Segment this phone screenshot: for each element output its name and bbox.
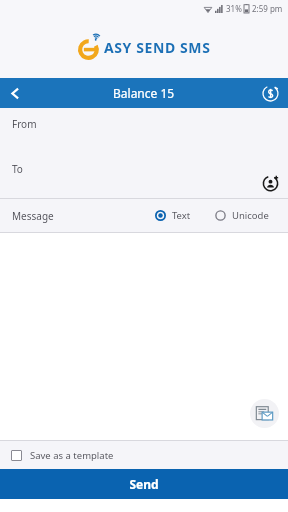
staticText: Send — [129, 476, 159, 492]
button[interactable]: Add contact — [258, 171, 282, 195]
button[interactable]: From — [0, 108, 288, 153]
button[interactable]: Unicode — [215, 209, 269, 222]
staticText: Unicode — [232, 209, 269, 222]
staticText: ASY SEND SMS — [104, 38, 211, 57]
staticText: Text — [172, 209, 191, 222]
button[interactable]: Insert template — [250, 399, 279, 428]
button[interactable]: Save as a template — [0, 441, 288, 469]
staticText: 2:59 pm — [252, 3, 283, 14]
staticText: Save as a template — [30, 449, 114, 462]
button[interactable]: To — [12, 162, 23, 176]
button[interactable]: Text — [155, 209, 191, 222]
staticText: Message — [12, 209, 54, 223]
button[interactable]: Refresh balance — [258, 81, 282, 105]
staticText: Balance 15 — [113, 85, 175, 101]
button[interactable]: Back — [0, 78, 30, 108]
staticText: From — [12, 117, 37, 131]
button[interactable]: Send — [0, 469, 288, 499]
staticText: 31% — [226, 3, 242, 14]
